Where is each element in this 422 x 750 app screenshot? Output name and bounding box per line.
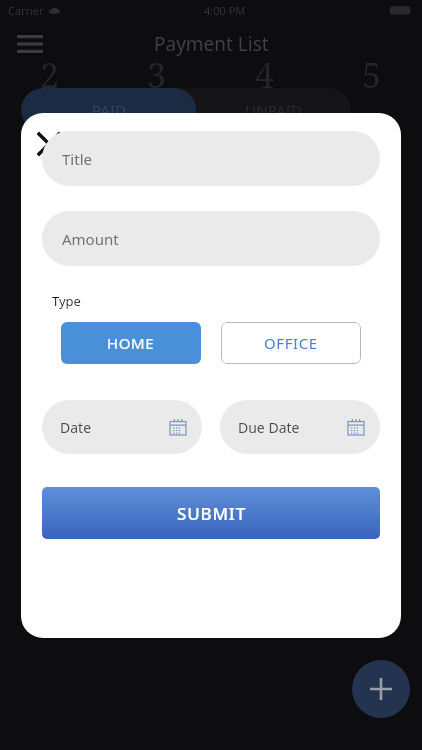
button[interactable]: SUBMIT [42, 487, 380, 539]
button[interactable]: OFFICE [221, 322, 361, 364]
staticText: Type [52, 292, 81, 310]
staticText: 5 [362, 52, 382, 98]
staticText: Due Date [238, 418, 300, 437]
button[interactable]: Title [42, 131, 380, 186]
staticText: 4 [255, 52, 275, 98]
staticText: SUBMIT [177, 502, 246, 525]
staticText: HOME [107, 333, 155, 353]
button[interactable]: Due Date [220, 400, 380, 454]
staticText: Carrier [8, 3, 44, 18]
button[interactable]: Add payment [352, 660, 410, 718]
button[interactable]: Date [42, 400, 202, 454]
staticText: PAID [92, 100, 126, 120]
button[interactable]: Menu [8, 22, 52, 66]
staticText: Date [60, 418, 92, 437]
staticText: Amount [62, 229, 119, 249]
button[interactable]: Amount [42, 211, 380, 266]
button[interactable]: PAID [21, 88, 196, 132]
staticText: 2 [40, 52, 60, 98]
staticText: Payment List [154, 31, 269, 57]
button[interactable]: UNPAID [196, 88, 351, 132]
button[interactable]: HOME [61, 322, 201, 364]
staticText: UNPAID [245, 100, 302, 120]
button[interactable]: Close [27, 122, 71, 166]
staticText: Title [62, 149, 92, 169]
staticText: 4:00 PM [204, 3, 246, 18]
staticText: 3 [147, 52, 167, 98]
staticText: OFFICE [264, 333, 318, 353]
